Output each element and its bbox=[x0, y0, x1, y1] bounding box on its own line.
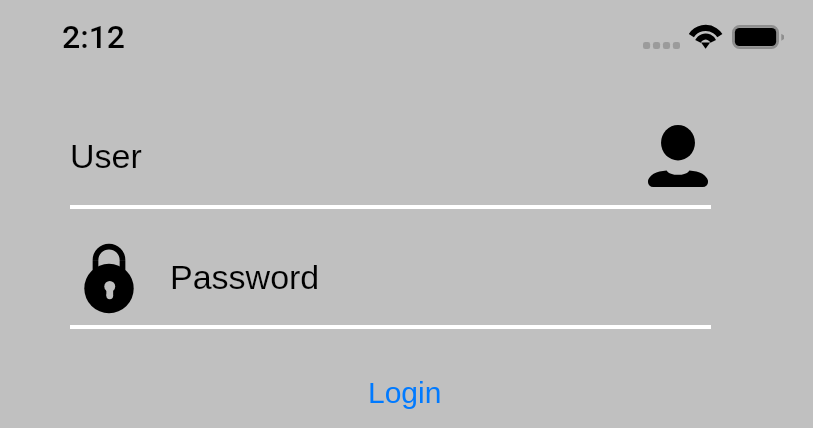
button[interactable]: Password bbox=[70, 240, 711, 329]
other: Password bbox=[84, 245, 134, 313]
staticText: 2:12 bbox=[62, 18, 126, 56]
staticText: Login bbox=[368, 376, 442, 410]
button[interactable]: Login bbox=[354, 370, 456, 416]
staticText: Password bbox=[170, 258, 320, 296]
other: User account bbox=[648, 125, 708, 187]
staticText: User bbox=[70, 137, 142, 175]
button[interactable]: User bbox=[70, 120, 711, 209]
